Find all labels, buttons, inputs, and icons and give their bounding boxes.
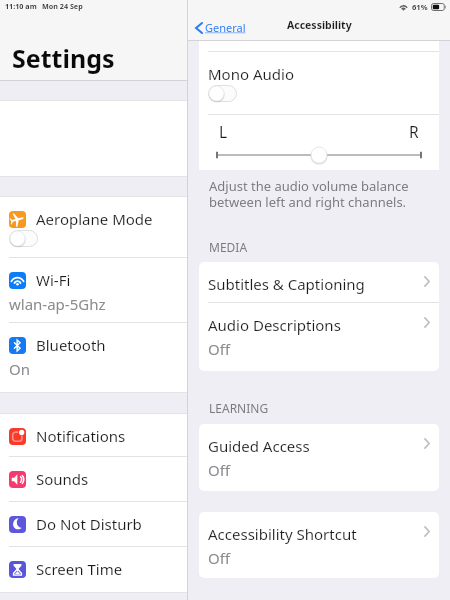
- staticText: Accessibility: [287, 18, 352, 32]
- button[interactable]: Subtitles & Captioning: [199, 262, 439, 303]
- staticText: LEARNING: [209, 400, 269, 416]
- staticText: wlan-ap-5Ghz: [9, 294, 106, 314]
- button[interactable]: Screen Time: [0, 547, 187, 592]
- staticText: R: [409, 121, 419, 142]
- button[interactable]: Do Not Disturb: [0, 502, 187, 547]
- button[interactable]: Accessibility Shortcut: [199, 512, 439, 578]
- staticText: 61%: [412, 2, 428, 12]
- button[interactable]: Toggle: [208, 85, 237, 102]
- staticText: General: [205, 20, 246, 35]
- button[interactable]: Aeroplane Mode: [0, 197, 187, 258]
- staticText: Subtitles & Captioning: [208, 274, 365, 294]
- button[interactable]: Bluetooth: [0, 323, 187, 392]
- staticText: Bluetooth: [36, 335, 106, 355]
- staticText: Wi-Fi: [36, 270, 71, 290]
- staticText: Guided Access: [208, 436, 310, 456]
- button[interactable]: Guided Access: [199, 424, 439, 491]
- staticText: Accessibility Shortcut: [208, 524, 357, 544]
- staticText: Mon 24 Sep: [42, 1, 83, 11]
- staticText: Mono Audio: [208, 64, 294, 84]
- button[interactable]: Notifications: [0, 414, 187, 457]
- staticText: Off: [208, 339, 231, 359]
- staticText: L: [219, 121, 228, 142]
- staticText: Adjust the audio volume balance between …: [209, 177, 409, 210]
- button[interactable]: General: [195, 20, 246, 35]
- staticText: Aeroplane Mode: [36, 209, 153, 229]
- staticText: MEDIA: [209, 239, 248, 255]
- button[interactable]: Mono Audio: [208, 64, 294, 84]
- staticText: Screen Time: [36, 559, 123, 579]
- staticText: Off: [208, 460, 231, 480]
- staticText: Notifications: [36, 426, 126, 446]
- staticText: Off: [208, 548, 231, 568]
- staticText: Sounds: [36, 469, 89, 489]
- staticText: 11:10 am: [5, 1, 37, 11]
- staticText: On: [9, 359, 30, 379]
- staticText: Settings: [12, 41, 115, 75]
- button[interactable]: Toggle: [9, 230, 38, 247]
- staticText: Audio Descriptions: [208, 315, 341, 335]
- button[interactable]: Wi-Fi: [0, 258, 187, 323]
- button[interactable]: Audio Descriptions: [199, 303, 439, 371]
- staticText: Do Not Disturb: [36, 514, 142, 534]
- button[interactable]: Sounds: [0, 457, 187, 502]
